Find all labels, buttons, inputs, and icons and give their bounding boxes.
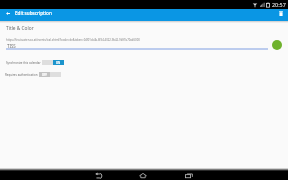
- staticText: ON: [56, 61, 61, 65]
- button[interactable]: Delete: [275, 9, 288, 21]
- button[interactable]: Back: [0, 9, 15, 21]
- button[interactable]: Home: [135, 171, 151, 180]
- staticText: OFF: [42, 73, 47, 77]
- staticText: Title & Color: [6, 25, 34, 32]
- staticText: 20:57: [272, 1, 286, 8]
- button[interactable]: Pick color: [272, 40, 282, 50]
- button[interactable]: Recent apps: [181, 171, 197, 180]
- staticText: https://tiss.tuwien.ac.at/events/ical.xh…: [6, 38, 266, 42]
- staticText: TISS: [7, 43, 16, 49]
- staticText: Edit subscription: [15, 10, 52, 16]
- staticText: Synchronize this calendar: [6, 61, 41, 65]
- button[interactable]: Back: [91, 171, 107, 180]
- staticText: Requires authentication: [5, 73, 38, 77]
- button[interactable]: Synchronize this calendar: [6, 60, 64, 65]
- button[interactable]: Requires authentication: [5, 72, 61, 77]
